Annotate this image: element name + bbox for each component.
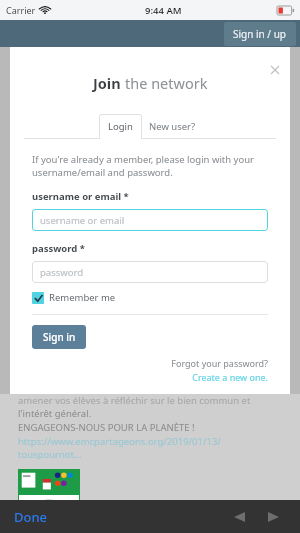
button[interactable]: Remember me	[32, 291, 116, 304]
staticText: 9:44 AM	[145, 4, 182, 17]
staticText: l'intérêt général.	[18, 407, 92, 420]
button[interactable]: Create a new one.	[32, 371, 268, 383]
staticText: Login	[108, 120, 133, 133]
staticText: Forgot your password?	[32, 357, 268, 369]
staticText: Join	[93, 73, 125, 93]
staticText: ENGAGEONS-NOUS POUR LA PLANÈTE !	[18, 421, 195, 434]
staticText: the network	[125, 73, 208, 93]
staticText: Remember me	[49, 291, 116, 304]
staticText: Done	[14, 508, 48, 526]
staticText: password *	[32, 242, 85, 255]
button[interactable]: Previous	[226, 504, 252, 530]
button[interactable]: Next	[260, 504, 286, 530]
button[interactable]: username or email	[32, 209, 268, 231]
button[interactable]: password	[32, 261, 268, 283]
staticText: password	[40, 266, 84, 279]
staticText: Sign in	[43, 330, 76, 344]
staticText: If you're already a member, please login…	[32, 153, 255, 179]
staticText: Create a new one.	[32, 371, 268, 383]
staticText: Sign in / up	[233, 27, 287, 41]
button[interactable]: Sign in	[32, 325, 86, 349]
button[interactable]: Login	[99, 114, 142, 139]
staticText: https://www.emcpartageons.org/2019/01/13…	[18, 435, 282, 461]
button[interactable]: Close	[264, 59, 286, 81]
button[interactable]: Done	[14, 508, 48, 526]
button[interactable]: New user?	[142, 114, 202, 139]
staticText: username or email *	[32, 190, 129, 203]
button[interactable]: Sign in / up	[224, 22, 296, 46]
staticText: amener vos élèves à réfléchir sur le bie…	[18, 394, 251, 407]
staticText: Carrier	[6, 4, 36, 16]
staticText: New user?	[149, 120, 196, 133]
staticText: username or email	[40, 214, 125, 227]
